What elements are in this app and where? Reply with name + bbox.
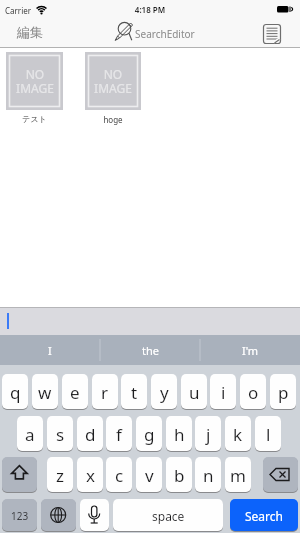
staticText: e <box>70 381 80 404</box>
staticText: q <box>10 381 21 404</box>
button[interactable]: Search <box>230 499 298 532</box>
button[interactable]: y <box>151 374 177 410</box>
staticText: l <box>266 423 271 446</box>
staticText: the <box>142 343 159 358</box>
staticText: SearchEditor <box>135 27 195 41</box>
staticText: m <box>230 464 246 487</box>
button[interactable]: g <box>136 416 162 452</box>
button[interactable]: q <box>2 374 28 410</box>
button[interactable]: x <box>77 457 103 493</box>
button[interactable]: p <box>270 374 296 410</box>
button[interactable]: c <box>106 457 132 493</box>
button[interactable]: NO IMAGE <box>6 52 63 110</box>
staticText: c <box>115 464 124 487</box>
button[interactable]: NO IMAGE <box>85 52 141 110</box>
staticText: j <box>206 423 211 446</box>
button[interactable] <box>263 457 298 493</box>
staticText: o <box>248 381 259 404</box>
button[interactable] <box>259 22 285 46</box>
staticText: h <box>174 423 185 446</box>
staticText: NO IMAGE <box>16 66 54 97</box>
button[interactable]: d <box>77 416 103 452</box>
button[interactable]: space <box>113 499 223 532</box>
button[interactable]: i <box>210 374 236 410</box>
staticText: 4:18 PM <box>0 4 300 16</box>
staticText: s <box>56 423 65 446</box>
button[interactable]: I <box>0 335 100 365</box>
staticText: NO IMAGE <box>94 66 132 97</box>
staticText: b <box>174 464 185 487</box>
staticText: g <box>144 423 155 446</box>
staticText: r <box>101 381 109 404</box>
button[interactable]: t <box>121 374 147 410</box>
staticText: n <box>203 464 214 487</box>
staticText: u <box>189 381 200 404</box>
button[interactable]: k <box>225 416 251 452</box>
staticText: i <box>221 381 226 404</box>
button[interactable]: j <box>195 416 221 452</box>
button[interactable]: m <box>225 457 251 493</box>
button[interactable]: w <box>32 374 58 410</box>
staticText: x <box>86 464 95 487</box>
button[interactable]: n <box>195 457 221 493</box>
button[interactable]: a <box>17 416 43 452</box>
staticText: hoge <box>75 114 151 126</box>
staticText: t <box>131 381 138 404</box>
button[interactable]: 編集 <box>8 22 52 42</box>
staticText: space <box>152 508 185 524</box>
button[interactable] <box>2 457 37 493</box>
button[interactable]: l <box>255 416 281 452</box>
staticText: Carrier <box>5 5 32 16</box>
staticText: Search <box>245 508 283 524</box>
staticText: テスト <box>0 114 73 126</box>
button[interactable]: the <box>100 335 200 365</box>
staticText: 123 <box>11 509 29 523</box>
button[interactable]: I'm <box>200 335 300 365</box>
button[interactable] <box>41 499 76 532</box>
staticText: y <box>160 381 169 404</box>
button[interactable]: u <box>181 374 207 410</box>
staticText: f <box>116 423 122 446</box>
button[interactable]: h <box>166 416 192 452</box>
staticText: z <box>56 464 64 487</box>
staticText: d <box>85 423 96 446</box>
staticText: p <box>278 381 289 404</box>
button[interactable]: 123 <box>2 499 37 532</box>
staticText: k <box>233 423 243 446</box>
staticText: v <box>145 464 154 487</box>
staticText: 編集 <box>17 24 43 40</box>
button[interactable]: o <box>240 374 266 410</box>
staticText: I <box>48 343 52 358</box>
button[interactable]: r <box>92 374 118 410</box>
button[interactable]: v <box>136 457 162 493</box>
staticText: a <box>25 423 35 446</box>
button[interactable]: e <box>62 374 88 410</box>
button[interactable] <box>80 499 109 532</box>
button[interactable]: s <box>47 416 73 452</box>
button[interactable]: b <box>166 457 192 493</box>
button[interactable]: z <box>47 457 73 493</box>
staticText: w <box>38 381 52 404</box>
button[interactable] <box>0 307 300 335</box>
staticText: I'm <box>242 343 259 358</box>
button[interactable]: f <box>106 416 132 452</box>
